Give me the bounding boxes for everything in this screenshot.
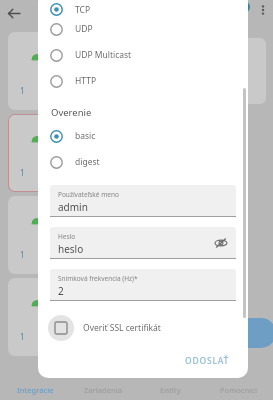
button[interactable]: ODOSLAŤ: [179, 350, 236, 372]
staticText: ODOSLAŤ: [185, 355, 230, 367]
button[interactable]: HTTP: [38, 68, 248, 94]
staticText: 1: [20, 85, 25, 96]
button[interactable]: digest: [38, 149, 248, 175]
staticText: Overenie: [51, 106, 92, 119]
staticText: Snímková frekvencia (Hz)*: [58, 274, 138, 283]
staticText: Zariadenia: [84, 385, 123, 395]
button[interactable]: Pomocníci: [205, 382, 271, 398]
staticText: 1: [20, 167, 25, 178]
button[interactable]: basic: [38, 123, 248, 149]
staticText: basic: [75, 130, 96, 142]
staticText: Entity: [160, 385, 181, 395]
staticText: 1: [20, 249, 25, 260]
staticText: digest: [75, 156, 100, 168]
button[interactable]: More options: [255, 2, 271, 18]
staticText: TCP: [75, 4, 91, 16]
button[interactable]: Entity: [137, 382, 203, 398]
staticText: admin: [58, 200, 88, 214]
button[interactable]: Toggle password visibility: [213, 235, 229, 251]
staticText: HTTP: [75, 75, 97, 87]
button[interactable]: UDP: [38, 16, 248, 42]
staticText: Heslo: [58, 232, 76, 241]
staticText: UDP Multicast: [75, 49, 132, 61]
staticText: Používateľské meno: [58, 190, 119, 199]
button[interactable]: Integrácie: [2, 382, 68, 398]
button[interactable]: Snímková frekvencia (Hz)*: [50, 269, 236, 301]
button[interactable]: Zariadenia: [70, 382, 136, 398]
button[interactable]: Overiť SSL certifikát: [38, 313, 248, 343]
staticText: 1: [20, 331, 25, 342]
button[interactable]: UDP Multicast: [38, 42, 248, 68]
button[interactable]: Používateľské meno: [50, 185, 236, 217]
staticText: Overiť SSL certifikát: [83, 322, 161, 334]
button[interactable]: Heslo: [50, 227, 236, 259]
button[interactable]: Back: [2, 2, 24, 24]
staticText: 2: [58, 284, 64, 298]
staticText: Pomocníci: [220, 385, 257, 395]
button[interactable]: TCP: [38, 0, 248, 16]
staticText: UDP: [75, 23, 93, 35]
staticText: heslo: [58, 242, 84, 256]
staticText: Integrácie: [17, 385, 54, 395]
